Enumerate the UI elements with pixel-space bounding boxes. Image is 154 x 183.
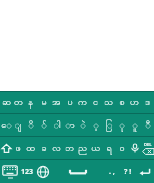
staticText: ဘ <box>65 142 74 155</box>
button[interactable]: တ <box>12 92 24 113</box>
button[interactable]: အ <box>50 92 63 113</box>
button[interactable]: ြ <box>102 114 115 136</box>
staticText: သ <box>104 96 113 109</box>
button[interactable]: Space <box>51 160 104 183</box>
staticText: ဲ <box>80 119 86 132</box>
button[interactable]: ခ <box>37 137 50 159</box>
staticText: ြ <box>105 119 113 132</box>
staticText: DEL <box>144 142 152 147</box>
button[interactable]: Microphone <box>128 137 141 159</box>
button[interactable]: Change language <box>35 160 51 183</box>
staticText: . , <box>109 167 115 177</box>
staticText: ျ <box>14 119 22 132</box>
button[interactable]: ဝ <box>115 137 128 159</box>
button[interactable]: Keyboard settings <box>0 160 20 183</box>
button[interactable]: ဲ <box>76 114 89 136</box>
staticText: ိ <box>28 119 34 132</box>
staticText: ဖ <box>15 142 21 155</box>
button[interactable]: ဒ <box>141 92 154 113</box>
button[interactable]: ် <box>37 114 50 136</box>
button[interactable]: သ <box>102 92 115 113</box>
staticText: ီ <box>145 119 151 132</box>
button[interactable]: ဆ <box>0 92 12 113</box>
button[interactable]: Delete <box>141 137 154 159</box>
button[interactable]: ပ <box>63 92 76 113</box>
staticText: ဟ <box>130 96 139 109</box>
staticText: န <box>28 96 33 109</box>
button[interactable]: Question and exclamation <box>120 160 136 183</box>
staticText: ူ <box>132 119 138 132</box>
staticText: ည <box>78 142 87 155</box>
staticText: ့ <box>93 119 99 132</box>
staticText: ု <box>119 119 125 132</box>
staticText: ဝ <box>119 142 125 155</box>
button[interactable]: ဖ <box>12 137 24 159</box>
staticText: မ <box>41 96 47 109</box>
button[interactable]: ု <box>115 114 128 136</box>
button[interactable]: ါ <box>50 114 63 136</box>
button[interactable]: င <box>89 92 102 113</box>
staticText: ထ <box>26 142 35 155</box>
button[interactable]: ဟ <box>128 92 141 113</box>
staticText: ာ <box>65 119 75 132</box>
staticText: ယ <box>91 142 100 155</box>
staticText: 123 <box>21 167 34 177</box>
button[interactable]: စ <box>115 92 128 113</box>
staticText: ် <box>41 119 47 132</box>
staticText: ပ <box>67 96 73 109</box>
button[interactable]: ရ <box>102 137 115 159</box>
staticText: အ <box>52 96 61 109</box>
button[interactable]: ထ <box>24 137 37 159</box>
button[interactable]: ာ <box>63 114 76 136</box>
button[interactable]: ည <box>76 137 89 159</box>
staticText: ါ <box>53 119 61 132</box>
button[interactable]: လ <box>50 137 63 159</box>
staticText: ရ <box>106 142 112 155</box>
button[interactable]: ယ <box>89 137 102 159</box>
staticText: တ <box>14 96 23 109</box>
staticText: ေ <box>1 119 12 132</box>
button[interactable]: ီ <box>141 114 154 136</box>
staticText: င <box>93 96 98 109</box>
staticText: ခ <box>41 142 47 155</box>
staticText: ဒ <box>145 96 150 109</box>
button[interactable]: Shift <box>0 137 12 159</box>
button[interactable]: န <box>24 92 37 113</box>
staticText: လ <box>52 142 61 155</box>
button[interactable]: ျ <box>12 114 24 136</box>
button[interactable]: ့ <box>89 114 102 136</box>
button[interactable]: Numbers <box>20 160 35 183</box>
staticText: က <box>78 96 87 109</box>
button[interactable]: ူ <box>128 114 141 136</box>
button[interactable]: က <box>76 92 89 113</box>
button[interactable]: ိ <box>24 114 37 136</box>
staticText: ဆ <box>2 96 11 109</box>
staticText: စ <box>119 96 125 109</box>
button[interactable]: Enter <box>136 160 154 183</box>
button[interactable]: ေ <box>0 114 12 136</box>
staticText: ? ! <box>124 167 132 177</box>
button[interactable]: ဘ <box>63 137 76 159</box>
button[interactable]: မ <box>37 92 50 113</box>
button[interactable]: Period and comma <box>104 160 120 183</box>
